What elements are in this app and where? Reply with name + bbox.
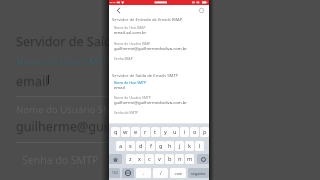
staticText: m [187,155,193,163]
staticText: guilherme@guilhermedsoliva.com.br [114,46,188,52]
staticText: Senha do SMTP [114,110,138,114]
staticText: j [179,142,181,150]
staticText: a [119,142,123,150]
staticText: Servidor de Saída [16,34,119,51]
staticText: t [154,128,157,136]
button[interactable]: Backspace [197,154,209,164]
staticText: guilherme@guilhe [16,119,126,136]
staticText: o [193,128,197,136]
staticText: u [173,128,177,136]
button[interactable]: w [121,127,130,137]
staticText: e [134,128,138,136]
staticText: h [168,142,172,150]
button[interactable]: y [161,127,170,137]
staticText: email [16,74,49,91]
staticText: v [158,155,161,163]
staticText: q [114,128,118,136]
staticText: k [188,142,191,150]
button[interactable]: r [141,127,150,137]
button[interactable]: Change keyboard [122,168,134,178]
button[interactable]: j [175,141,184,151]
staticText: / [160,170,162,176]
staticText: n [178,155,182,163]
staticText: w [123,128,128,136]
staticText: x [138,155,141,163]
button[interactable]: v [155,154,164,164]
staticText: email [114,85,125,91]
staticText: guilherme@guilhermedsoliva.com.br [114,100,188,106]
staticText: email-ssl.com.br [114,30,147,36]
button[interactable]: m [185,154,194,164]
staticText: Senha do SMTP [22,153,99,167]
staticText: g [159,142,163,150]
button[interactable]: seguinte [188,168,209,178]
staticText: y [164,128,167,136]
staticText: guilherme@guilhe [16,118,126,135]
button[interactable]: k [185,141,194,151]
staticText: Servidor de Entrada de Emails IMAP [112,17,183,23]
staticText: c [148,155,151,163]
staticText: Nome do Usuário SM [16,104,112,117]
button[interactable]: c [145,154,154,164]
staticText: Nome do Host SMTP [16,56,109,69]
staticText: Nome do Host SMTP [114,80,146,84]
staticText: 123 [112,171,118,175]
button[interactable]: a [116,141,125,151]
button[interactable]: Help [195,5,207,16]
staticText: Nome do Usuário SM [16,103,112,116]
staticText: l [199,142,201,150]
staticText: d [139,142,143,150]
button[interactable]: t [151,127,160,137]
staticText: guilherme@guilhe [16,118,126,135]
button[interactable]: p [200,127,209,137]
button[interactable]: Back [111,5,125,16]
button[interactable]: Shift [109,154,122,164]
staticText: Nome do Host IMAP [114,25,146,29]
button[interactable]: d [136,141,145,151]
button[interactable]: z [126,154,135,164]
staticText: Senha IMAP [114,56,133,60]
staticText: seguinte [191,171,206,176]
staticText: f [150,142,152,150]
button[interactable]: n [175,154,184,164]
button[interactable]: u [170,127,179,137]
staticText: Nome do Usuário SMTP [114,95,151,99]
staticText: Servidor de Saída [16,33,119,50]
button[interactable]: g [156,141,165,151]
staticText: Nome do Host SMTP [16,55,109,68]
staticText: p [203,128,207,136]
staticText: i [184,128,186,136]
staticText: b [168,155,172,163]
staticText: email [16,73,49,90]
button[interactable]: i [180,127,189,137]
button[interactable]: f [146,141,155,151]
staticText: email [16,72,49,89]
staticText: Senha do SMTP [22,154,99,168]
staticText: Servidor de Saída de Emails SMTP [112,73,179,79]
button[interactable]: x [135,154,144,164]
button[interactable]: h [165,141,174,151]
button[interactable]: . [136,168,151,178]
button[interactable]: s [126,141,135,151]
staticText: z [129,155,132,163]
staticText: r [144,128,147,136]
staticText: Servidor de Saída [16,33,119,50]
button[interactable]: q [111,127,120,137]
staticText: Senha do SMTP [22,153,99,167]
button[interactable]: o [190,127,199,137]
button[interactable]: e [131,127,140,137]
staticText: . [143,170,145,176]
staticText: .com [174,171,183,176]
staticText: Nome do Usuário IMAP [114,41,151,45]
staticText: s [129,142,132,150]
staticText: Nome do Usuário SM [16,103,112,116]
button[interactable]: .com [170,168,186,178]
button[interactable]: / [153,168,168,178]
button[interactable]: l [195,141,204,151]
button[interactable]: b [165,154,174,164]
staticText: Nome do Host SMTP [16,55,109,68]
button[interactable]: 123 [109,168,120,178]
